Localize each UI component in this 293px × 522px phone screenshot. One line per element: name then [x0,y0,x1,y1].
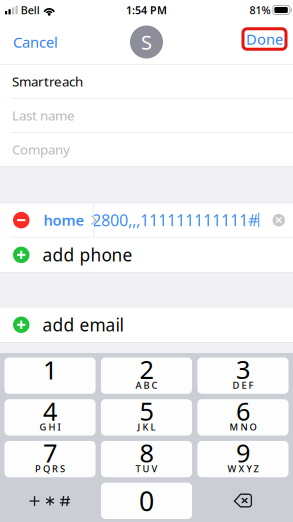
staticText: Smartreach [12,72,83,90]
button[interactable]: 5 [101,399,192,435]
button[interactable]: 8 [101,441,192,477]
staticText: 1:54 PM [126,3,167,17]
button[interactable]: Delete [197,483,288,519]
button[interactable]: add email [0,307,293,342]
staticText: Company [12,140,70,158]
staticText: 3 [236,352,250,386]
staticText: Done [246,29,283,49]
staticText: Bell [21,3,40,17]
staticText: home [43,210,84,230]
staticText: 6 [236,394,250,428]
staticText: J K L [137,421,155,433]
staticText: 2 [139,352,153,386]
staticText: G H I [39,421,60,433]
button[interactable]: 0 [101,483,192,519]
staticText: 1 [43,353,57,386]
button[interactable]: add phone [0,238,293,272]
button[interactable]: 1 [4,357,96,394]
staticText: add email [42,313,123,336]
staticText: D E F [232,379,253,391]
button[interactable]: Cancel [0,24,68,60]
button[interactable]: 9 [197,441,288,477]
staticText: 7 [43,436,57,469]
button[interactable]: 2 [101,357,192,394]
button[interactable]: 7 [4,441,96,477]
button[interactable]: Remove phone [0,203,36,237]
button[interactable]: 6 [197,399,288,435]
staticText: Cancel [13,32,58,52]
button[interactable]: Done [243,25,293,59]
staticText: 4 [43,394,57,428]
staticText: S [141,29,152,55]
staticText: 8 [139,436,153,469]
staticText: 0 [139,483,154,518]
button[interactable]: Clear text [267,203,293,237]
staticText: 5 [139,394,153,428]
staticText: 81% [249,3,270,17]
staticText: M N O [229,421,256,433]
staticText: add phone [42,243,132,266]
button[interactable]: 4 [4,399,96,435]
button[interactable]: 3 [197,357,288,394]
button[interactable]: Plus star pound [4,483,96,519]
staticText: T U V [135,462,157,475]
staticText: A B C [135,379,157,391]
button[interactable]: home [36,203,93,237]
staticText: W X Y Z [227,462,258,475]
staticText: P Q R S [35,462,65,475]
staticText: Last name [12,106,75,124]
staticText: 9 [236,436,250,469]
staticText: 383-2800,,,111111111111# [60,209,258,231]
